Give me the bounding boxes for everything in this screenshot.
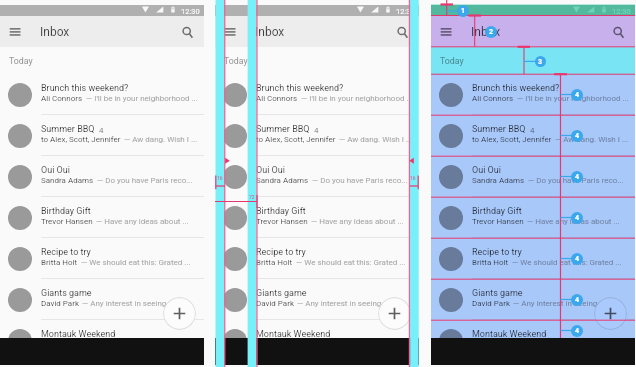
- button[interactable]: Compose new message: [163, 297, 196, 330]
- staticText: — Have any ideas about ...: [527, 217, 620, 226]
- staticText: 12:30: [612, 7, 631, 16]
- staticText: — Do you have Paris reco...: [312, 176, 408, 185]
- staticText: Montauk Weekend: [41, 329, 116, 340]
- staticText: — Aw dang. Wish I ...: [124, 135, 198, 144]
- staticText: 4: [575, 91, 580, 99]
- staticText: Recipe to try: [472, 247, 522, 258]
- button[interactable]: Navigation menu: [218, 21, 242, 43]
- staticText: Britta Holt: [256, 258, 293, 267]
- staticText: 4: [575, 173, 580, 181]
- staticText: Sandra Adams: [256, 176, 309, 185]
- staticText: Inbox: [40, 25, 70, 39]
- staticText: Brunch this weekend?: [472, 83, 560, 94]
- staticText: 12:30: [181, 7, 200, 16]
- staticText: Oui Oui: [472, 165, 501, 176]
- staticText: Britta Holt: [472, 258, 509, 267]
- staticText: to Alex, Scott, Jennifer: [41, 135, 121, 144]
- staticText: — Have any ideas about ...: [96, 217, 189, 226]
- staticText: Birthday Gift: [256, 206, 306, 217]
- button[interactable]: Search: [607, 20, 631, 44]
- staticText: 4: [314, 126, 319, 135]
- staticText: 4: [99, 126, 104, 135]
- staticText: Summer BBQ: [41, 124, 95, 135]
- staticText: — Do you have Paris reco...: [97, 176, 193, 185]
- staticText: David Park: [41, 299, 79, 308]
- staticText: Giants game: [41, 288, 92, 299]
- staticText: Giants game: [472, 288, 523, 299]
- button[interactable]: Navigation menu: [434, 21, 458, 43]
- button[interactable]: Oui Oui: [215, 156, 419, 197]
- button[interactable]: Brunch this weekend?: [215, 74, 419, 115]
- staticText: Montauk Weekend: [472, 329, 547, 340]
- button[interactable]: Birthday Gift: [0, 197, 204, 238]
- button[interactable]: Oui Oui: [0, 156, 204, 197]
- staticText: Britta Holt: [41, 258, 78, 267]
- staticText: 4: [575, 132, 580, 140]
- staticText: Oui Oui: [41, 165, 70, 176]
- staticText: 2: [489, 28, 494, 36]
- staticText: 4: [575, 296, 580, 304]
- staticText: Ali Connors: [256, 94, 298, 103]
- button[interactable]: Birthday Gift: [431, 197, 635, 238]
- button[interactable]: Birthday Gift: [215, 197, 419, 238]
- staticText: — I'll be in your neighborhood ...: [301, 94, 413, 103]
- staticText: — Any interest in seeing ...: [513, 299, 606, 308]
- button[interactable]: Brunch this weekend?: [431, 74, 635, 115]
- staticText: Sandra Adams: [472, 176, 525, 185]
- staticText: Ali Connors: [472, 94, 514, 103]
- button[interactable]: Montauk Weekend: [0, 320, 204, 361]
- button[interactable]: Summer BBQ: [215, 115, 419, 156]
- button[interactable]: Montauk Weekend: [215, 320, 419, 361]
- staticText: Summer BBQ: [256, 124, 310, 135]
- button[interactable]: Summer BBQ: [431, 115, 635, 156]
- staticText: Brunch this weekend?: [41, 83, 129, 94]
- staticText: David Park: [472, 299, 510, 308]
- staticText: 12:30: [396, 7, 415, 16]
- button[interactable]: Giants game: [431, 279, 635, 320]
- button[interactable]: Search: [176, 20, 200, 44]
- button[interactable]: Montauk Weekend: [431, 320, 635, 361]
- button[interactable]: Giants game: [0, 279, 204, 320]
- staticText: — Have any ideas about ...: [311, 217, 404, 226]
- staticText: Sandra Adams: [41, 176, 94, 185]
- staticText: David Park: [256, 299, 294, 308]
- button[interactable]: Recipe to try: [431, 238, 635, 279]
- button[interactable]: Compose new message: [594, 297, 627, 330]
- staticText: Trevor Hansen: [472, 217, 524, 226]
- staticText: Inbox: [471, 25, 501, 39]
- staticText: Recipe to try: [256, 247, 306, 258]
- staticText: 72: [249, 194, 255, 200]
- staticText: — Do you have Paris reco...: [528, 176, 624, 185]
- staticText: Inbox: [255, 25, 285, 39]
- staticText: Recipe to try: [41, 247, 91, 258]
- button[interactable]: Giants game: [215, 279, 419, 320]
- staticText: to Alex, Scott, Jennifer: [472, 135, 552, 144]
- button[interactable]: Brunch this weekend?: [0, 74, 204, 115]
- staticText: 16: [410, 175, 416, 181]
- staticText: Trevor Hansen: [256, 217, 308, 226]
- staticText: Birthday Gift: [472, 206, 522, 217]
- button[interactable]: Compose new message: [378, 297, 411, 330]
- staticText: — I'll be in your neighborhood ...: [517, 94, 629, 103]
- staticText: Oui Oui: [256, 165, 285, 176]
- button[interactable]: Search: [391, 20, 415, 44]
- staticText: Ali Connors: [41, 94, 83, 103]
- staticText: Today: [9, 56, 33, 66]
- staticText: Summer BBQ: [472, 124, 526, 135]
- staticText: Birthday Gift: [41, 206, 91, 217]
- staticText: 4: [575, 214, 580, 222]
- button[interactable]: Recipe to try: [215, 238, 419, 279]
- button[interactable]: Oui Oui: [431, 156, 635, 197]
- staticText: — I'll be in your neighborhood ...: [86, 94, 198, 103]
- button[interactable]: Summer BBQ: [0, 115, 204, 156]
- button[interactable]: Navigation menu: [3, 21, 27, 43]
- staticText: — We should eat this: Grated ...: [512, 258, 622, 267]
- staticText: 4: [575, 255, 580, 263]
- button[interactable]: Recipe to try: [0, 238, 204, 279]
- staticText: Today: [440, 56, 464, 66]
- staticText: 16: [217, 175, 223, 181]
- staticText: Giants game: [256, 288, 307, 299]
- staticText: 4: [575, 327, 580, 335]
- staticText: — We should eat this: Grated ...: [296, 258, 406, 267]
- staticText: — Aw dang. Wish I ...: [555, 135, 629, 144]
